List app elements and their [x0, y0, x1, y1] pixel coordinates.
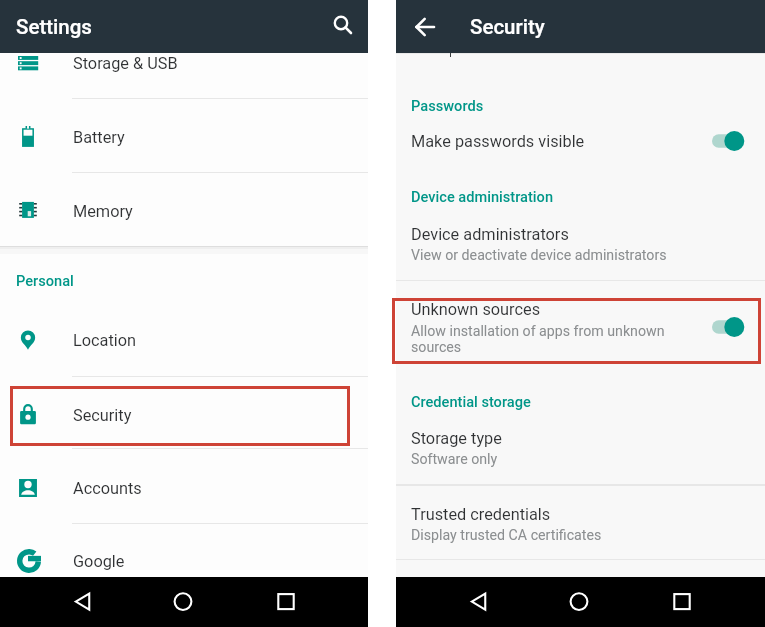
staticText: View or deactivate device administrators	[411, 247, 667, 264]
button[interactable]: Back	[443, 577, 513, 627]
staticText: Battery	[73, 128, 125, 147]
staticText: Security	[470, 15, 545, 39]
button[interactable]: Battery	[0, 99, 368, 173]
button[interactable]: Back	[408, 10, 442, 44]
button[interactable]: Memory	[0, 173, 368, 249]
button[interactable]: Home	[148, 577, 218, 627]
staticText: Display trusted CA certificates	[411, 527, 602, 544]
button[interactable]: Security	[0, 377, 368, 449]
button[interactable]: Recent apps	[647, 577, 717, 627]
button[interactable]: Toggle	[712, 130, 746, 152]
button[interactable]: Make passwords visible	[396, 122, 765, 166]
staticText: Storage & USB	[73, 54, 178, 73]
staticText: Personal	[16, 272, 74, 289]
button[interactable]: Settings	[0, 0, 368, 53]
staticText: Location	[73, 331, 137, 350]
staticText: Make passwords visible	[411, 132, 585, 151]
staticText: sources	[411, 339, 462, 356]
staticText: Settings	[16, 15, 92, 39]
staticText: Software only	[411, 451, 498, 468]
button[interactable]: Trusted credentials	[396, 495, 765, 555]
staticText: Device administrators	[411, 225, 569, 244]
staticText: Passwords	[411, 97, 484, 114]
button[interactable]: Security	[396, 0, 765, 53]
button[interactable]: Toggle	[712, 316, 746, 338]
button[interactable]: Recent apps	[251, 577, 321, 627]
button[interactable]: Device administrators	[396, 218, 765, 276]
button[interactable]: Location	[0, 303, 368, 377]
staticText: Google	[73, 552, 125, 571]
button[interactable]: Storage & USB	[0, 53, 368, 99]
staticText: Security	[73, 406, 132, 425]
button[interactable]: Storage type	[396, 420, 765, 484]
staticText: Allow installation of apps from unknown	[411, 323, 665, 340]
staticText: Storage type	[411, 429, 502, 448]
button[interactable]: Search	[325, 7, 357, 39]
staticText: Accounts	[73, 479, 142, 498]
staticText: Credential storage	[411, 393, 531, 410]
button[interactable]: Unknown sources	[396, 298, 765, 364]
staticText: Unknown sources	[411, 300, 541, 319]
staticText: Memory	[73, 202, 133, 221]
button[interactable]: Home	[544, 577, 614, 627]
staticText: Device administration	[411, 188, 554, 205]
button[interactable]: Back	[47, 577, 117, 627]
button[interactable]: Accounts	[0, 449, 368, 524]
button[interactable]: Google	[0, 524, 368, 577]
staticText: Trusted credentials	[411, 505, 551, 524]
